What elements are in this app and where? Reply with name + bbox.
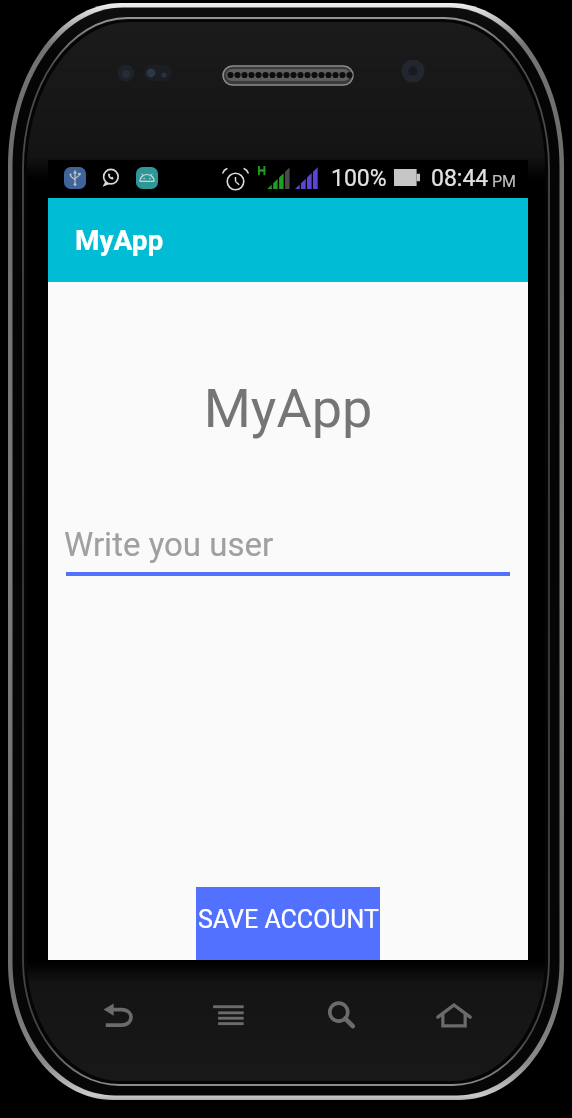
button[interactable]: Write you user bbox=[64, 525, 274, 564]
staticText: PM bbox=[492, 172, 517, 191]
staticText: 08:44 bbox=[431, 165, 489, 192]
button[interactable]: Menu bbox=[174, 975, 286, 1055]
staticText: 100% bbox=[331, 165, 387, 192]
button[interactable]: Home bbox=[398, 975, 510, 1055]
staticText: SAVE ACCOUNT bbox=[198, 905, 379, 934]
button[interactable]: Back bbox=[62, 975, 174, 1055]
staticText: MyApp bbox=[75, 224, 164, 257]
button[interactable]: Search bbox=[286, 975, 398, 1055]
staticText: MyApp bbox=[48, 377, 528, 440]
button[interactable]: MyApp bbox=[48, 198, 528, 282]
button[interactable]: SAVE ACCOUNT bbox=[196, 887, 380, 960]
